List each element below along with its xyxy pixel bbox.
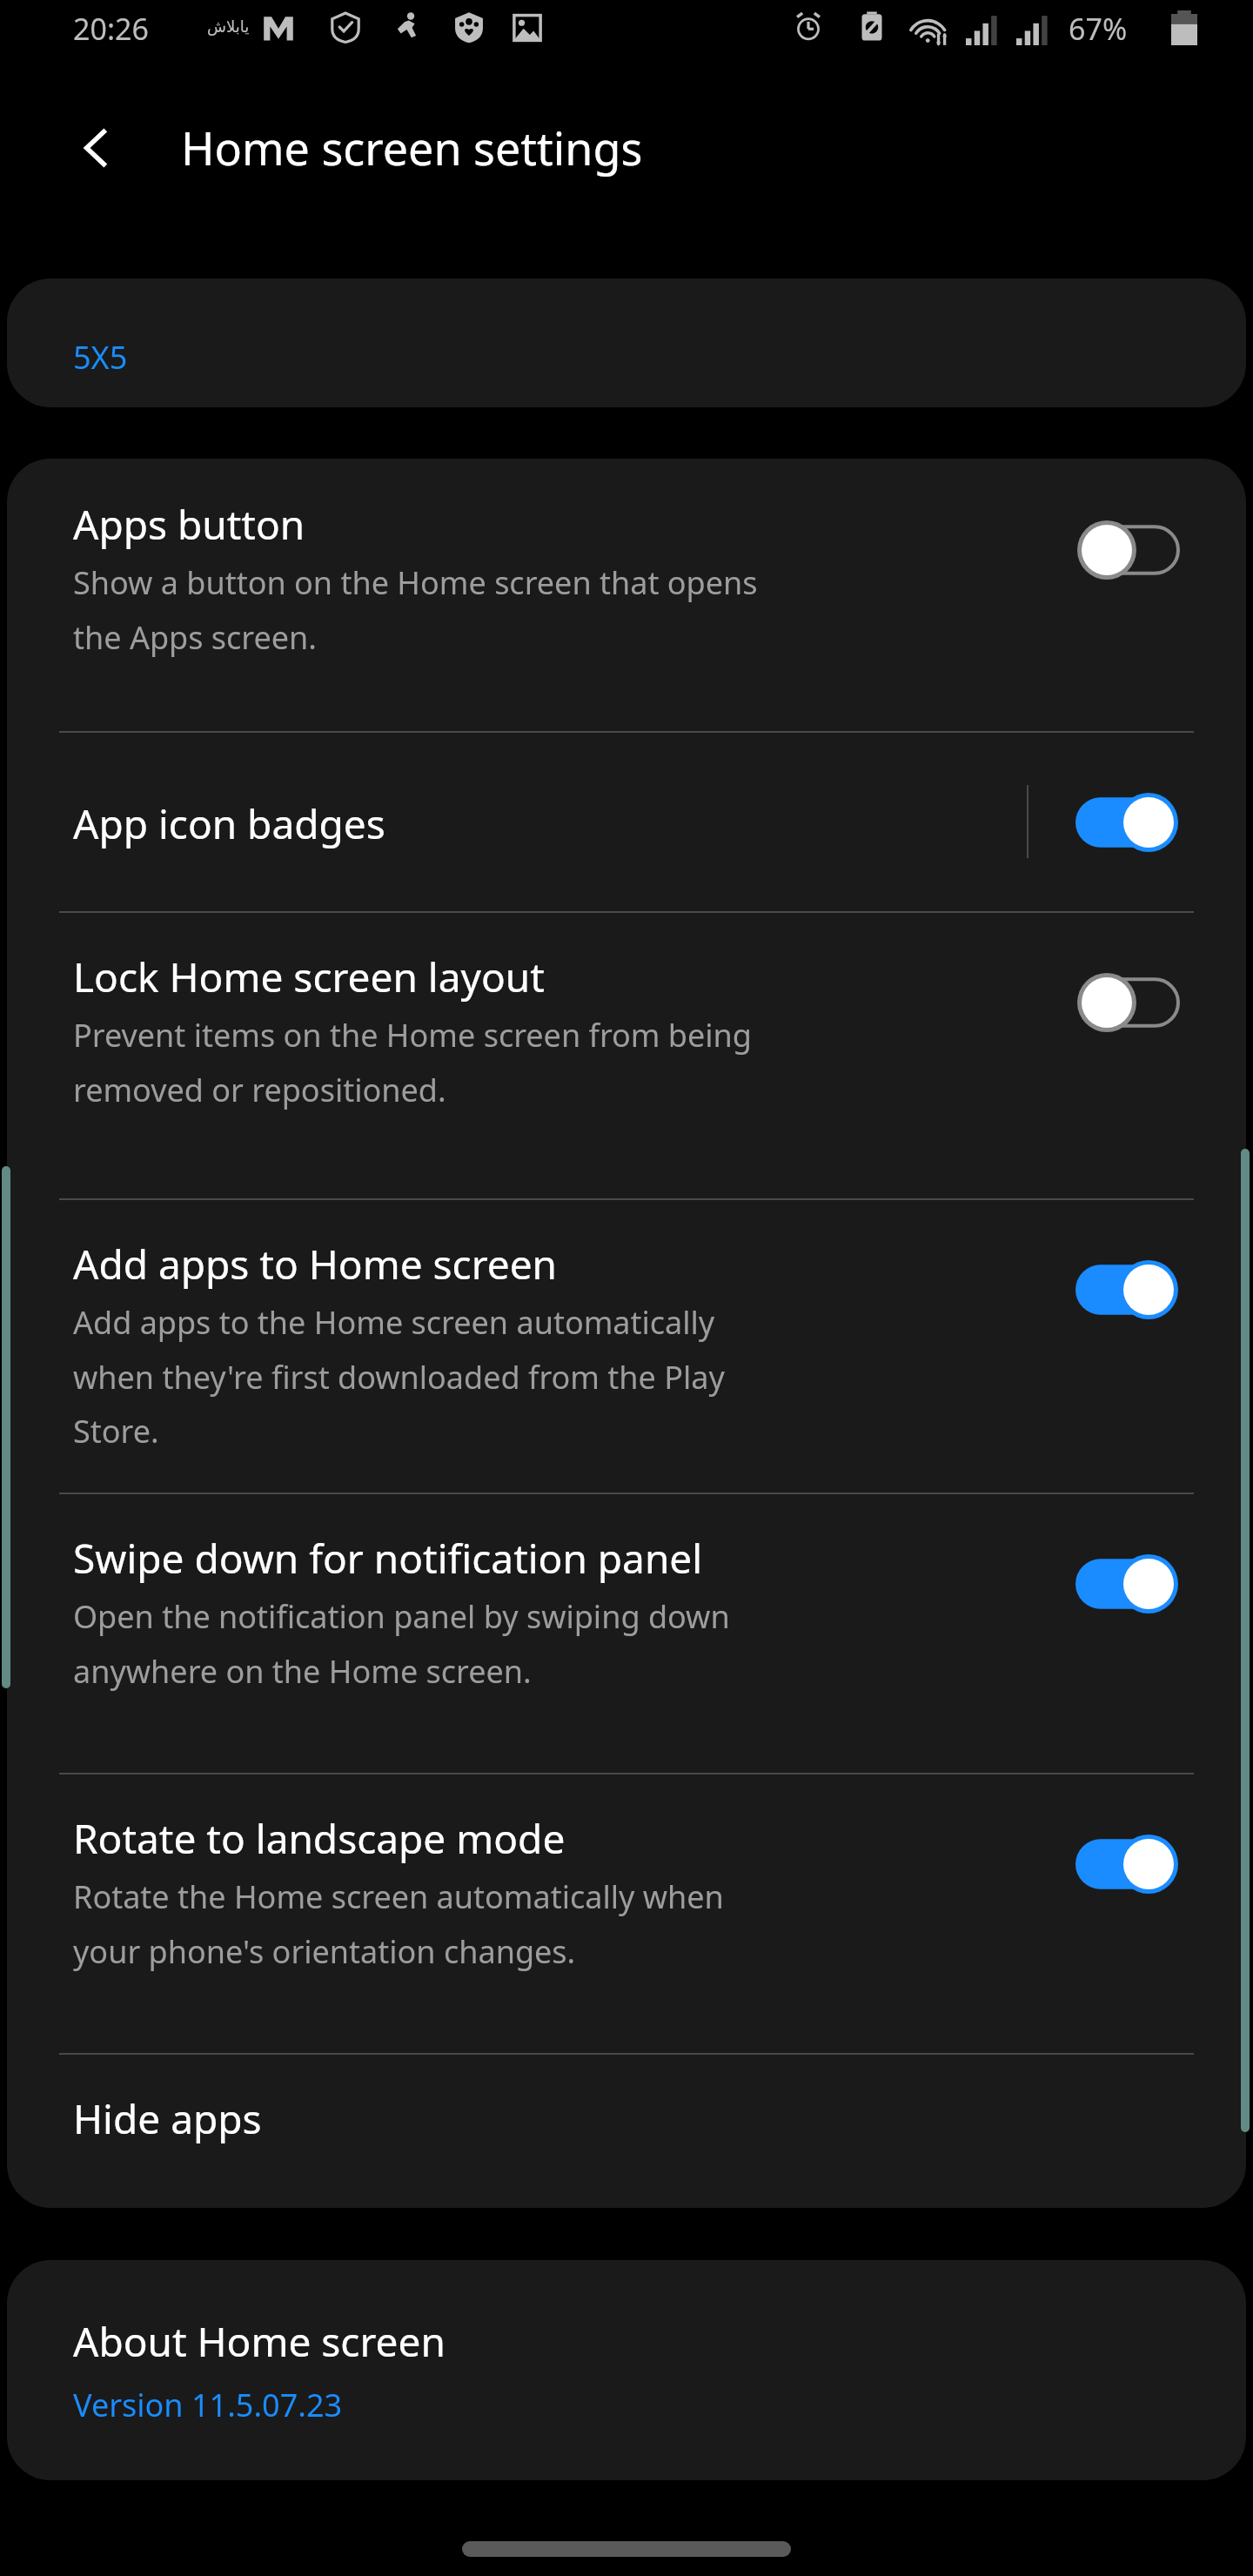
button[interactable]: Swipe down for notification panel on [1070, 1550, 1185, 1618]
staticText: Rotate the Home screen automatically whe… [73, 1875, 724, 1972]
staticText: 20:26 [73, 9, 149, 49]
staticText: About Home screen [73, 2314, 446, 2369]
staticText: Version 11.5.07.23 [73, 2384, 343, 2426]
button[interactable]: App icon badges [7, 731, 1246, 911]
staticText: 5X5 [73, 336, 128, 379]
button[interactable]: Add apps to Home screen on [1070, 1256, 1185, 1324]
staticText: Hide apps [73, 2091, 262, 2146]
staticText: Add apps to the Home screen automaticall… [73, 1301, 725, 1452]
button[interactable]: Add apps to Home screen [7, 1198, 1246, 1493]
button[interactable]: Hide apps [7, 2053, 1246, 2208]
staticText: Lock Home screen layout [73, 949, 545, 1004]
staticText: App icon badges [73, 796, 385, 851]
button[interactable]: Rotate to landscape mode on [1070, 1830, 1185, 1898]
button[interactable]: Lock Home screen layout [7, 911, 1246, 1198]
button[interactable]: Apps button off [1070, 516, 1185, 584]
button[interactable]: About Home screen [7, 2260, 1246, 2480]
button[interactable]: Rotate to landscape mode [7, 1773, 1246, 2053]
button[interactable]: Apps button [7, 459, 1246, 731]
staticText: Apps button [73, 497, 305, 552]
staticText: Home screen settings [181, 117, 643, 178]
button[interactable]: App icon badges on [1070, 788, 1185, 856]
staticText: Rotate to landscape mode [73, 1811, 566, 1866]
staticText: Swipe down for notification panel [73, 1531, 703, 1586]
staticText: 67% [1069, 9, 1128, 49]
staticText: Add apps to Home screen [73, 1237, 558, 1291]
staticText: يابلاش [207, 17, 250, 36]
button[interactable]: Swipe down for notification panel [7, 1493, 1246, 1773]
button[interactable]: Back [54, 106, 137, 190]
staticText: Prevent items on the Home screen from be… [73, 1014, 752, 1110]
staticText: Open the notification panel by swiping d… [73, 1595, 730, 1692]
button[interactable]: 5X5 [7, 278, 1246, 407]
staticText: Show a button on the Home screen that op… [73, 561, 758, 658]
button[interactable]: Lock Home screen layout off [1070, 969, 1185, 1036]
